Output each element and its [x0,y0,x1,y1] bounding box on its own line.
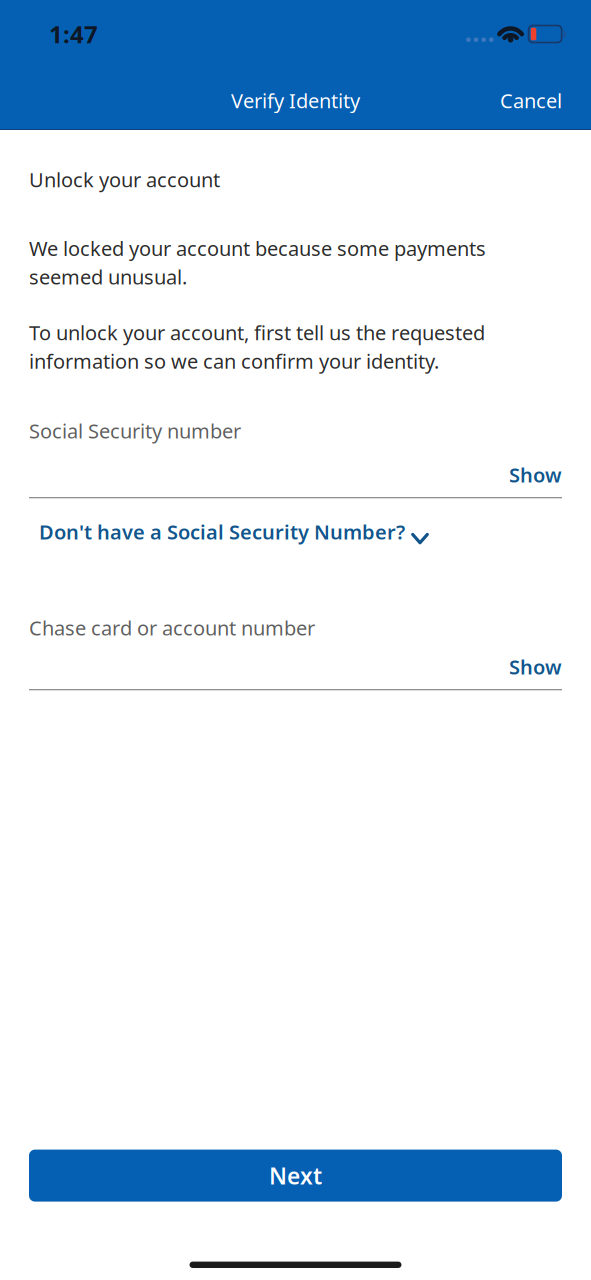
staticText: Cancel [500,87,562,114]
staticText: Show [509,461,562,488]
staticText: Show [509,653,562,680]
staticText: Unlock your account [29,166,220,193]
button[interactable]: Chase card or account number [29,614,562,641]
staticText: Don't have a Social Security Number? [39,518,405,545]
button[interactable]: Don't have a Social Security Number? [29,518,562,545]
staticText: Next [269,1160,322,1191]
button[interactable]: Show [509,653,562,680]
staticText: Chase card or account number [29,614,315,641]
button[interactable]: Social Security number [29,417,562,444]
staticText: Verify Identity [231,87,360,114]
staticText: To unlock your account, first tell us th… [29,319,485,374]
button[interactable]: Next [29,1150,562,1202]
staticText: We locked your account because some paym… [29,235,486,290]
staticText: 1:47 [49,18,98,50]
button[interactable]: Cancel [500,86,562,115]
staticText: Social Security number [29,417,241,444]
button[interactable]: Show [509,461,562,488]
